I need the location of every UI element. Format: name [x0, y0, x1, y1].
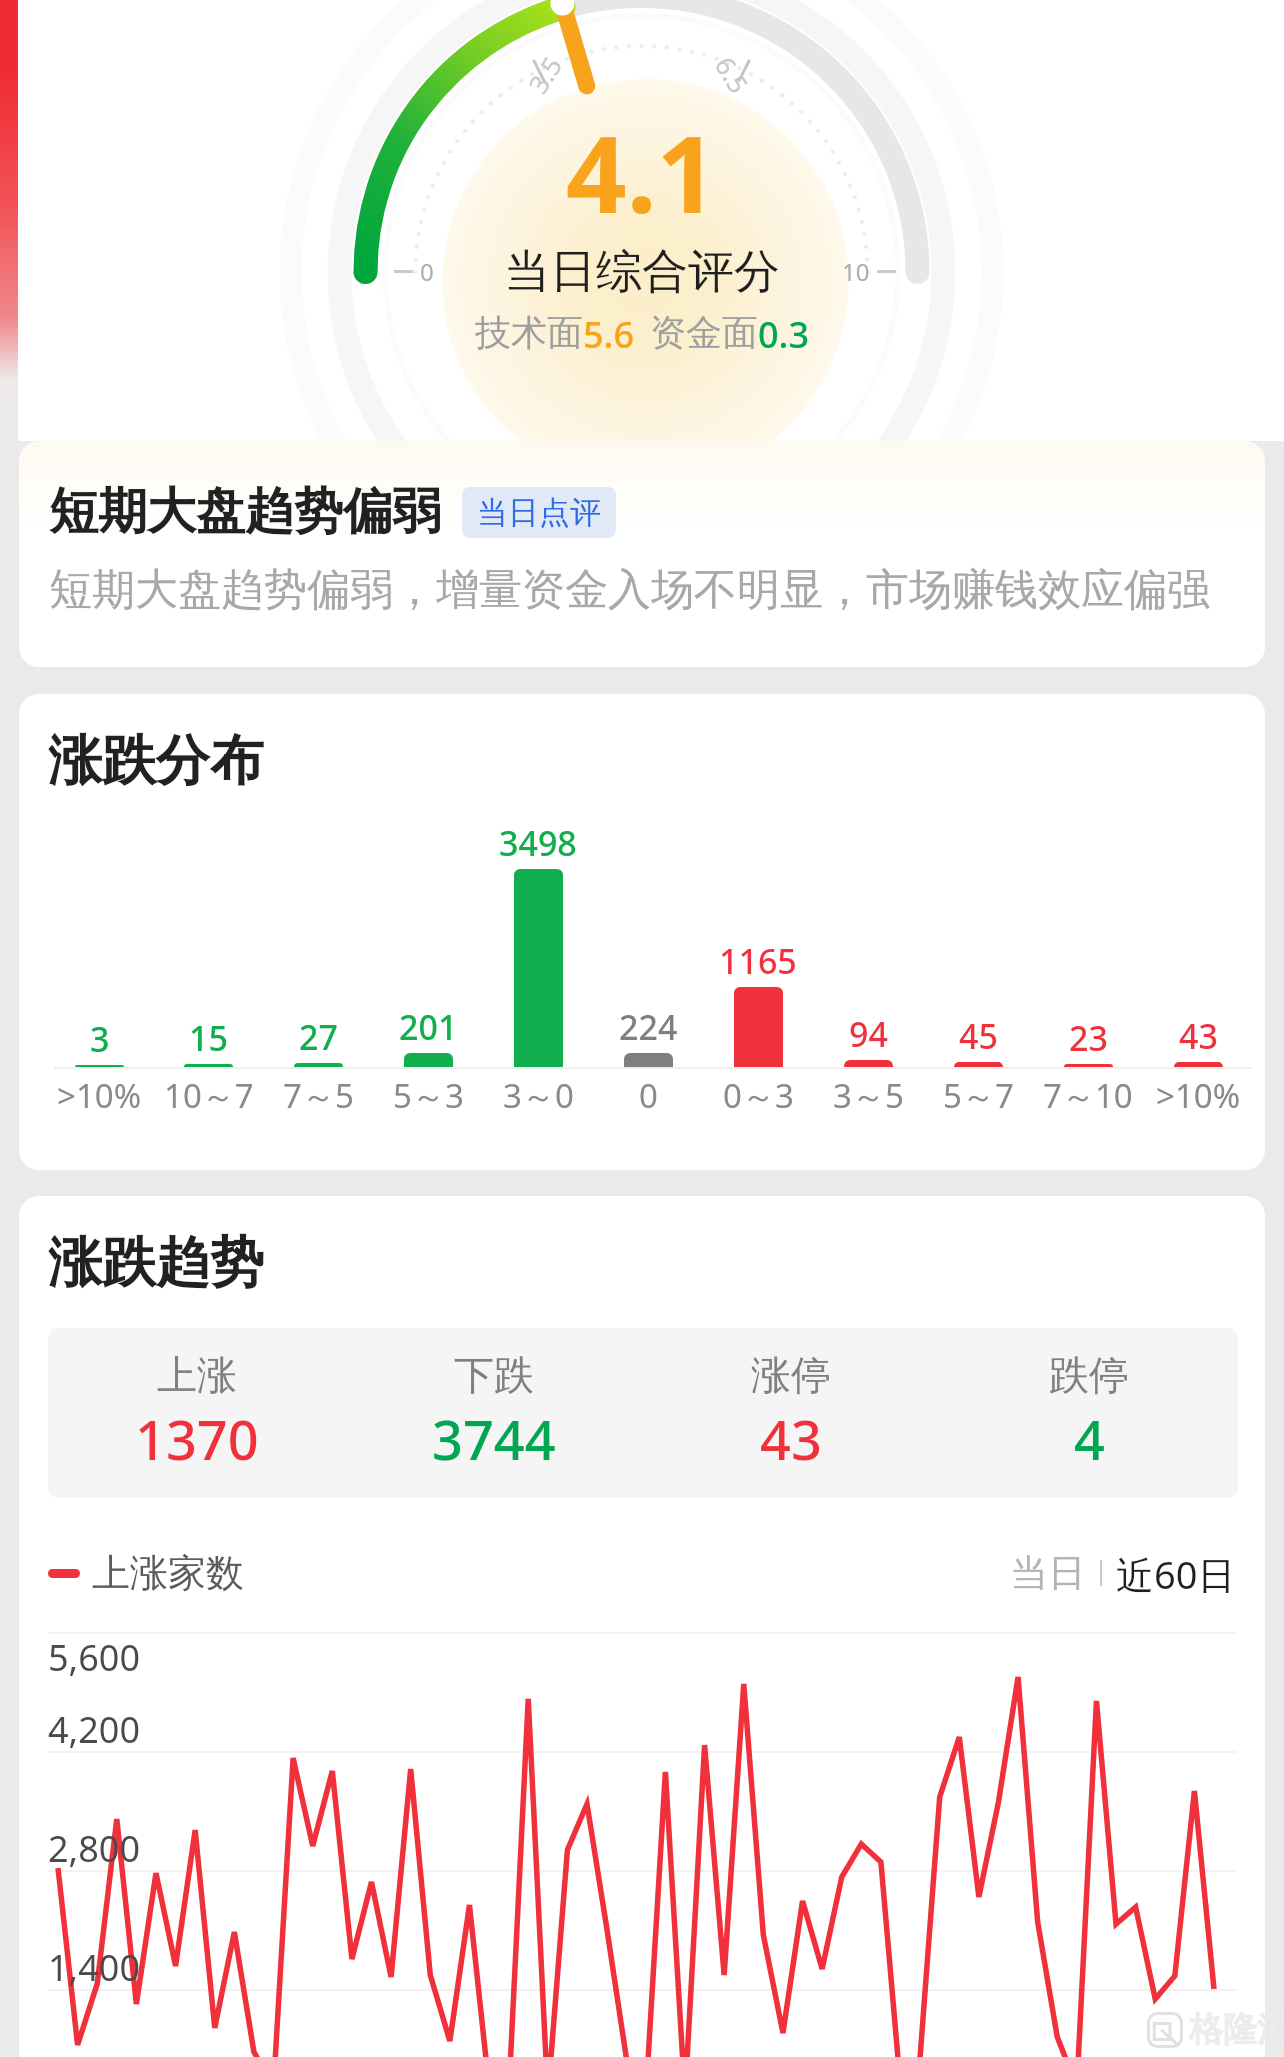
staticText: 5～3 [393, 1073, 464, 1118]
staticText: 43 [760, 1402, 822, 1476]
staticText: 7～10 [1043, 1073, 1133, 1118]
staticText: 短期大盘趋势偏弱，增量资金入场不明显，市场赚钱效应偏强 [49, 563, 1210, 617]
staticText: 当日点评 [477, 493, 601, 532]
staticText: 4,200 [48, 1705, 141, 1754]
staticText: 224 [619, 1004, 678, 1050]
button[interactable]: 201 [373, 694, 483, 1170]
button[interactable]: 224 [593, 694, 703, 1170]
staticText: 涨跌趋势 [48, 1229, 264, 1297]
staticText: 资金面 [650, 310, 758, 355]
staticText: 10 [842, 255, 870, 288]
staticText: 45 [959, 1013, 998, 1059]
staticText: 下跌 [454, 1350, 534, 1400]
button[interactable]: 45 [923, 694, 1033, 1170]
button[interactable]: 3498 [483, 694, 593, 1170]
staticText: 23 [1069, 1015, 1108, 1061]
button[interactable]: 当日综合评分 4.1 [0, 0, 1284, 441]
staticText: 10～7 [164, 1073, 254, 1118]
staticText: 5～7 [943, 1073, 1014, 1118]
staticText: 6.5 [708, 49, 757, 99]
staticText: 94 [849, 1011, 888, 1057]
staticText: 格隆汇 [1189, 2008, 1284, 2051]
button[interactable]: 当日点评 [462, 487, 616, 538]
staticText: >10% [1156, 1073, 1241, 1118]
staticText: 0 [639, 1073, 658, 1118]
button[interactable]: 23 [1033, 694, 1143, 1170]
staticText: 3～0 [503, 1073, 574, 1118]
staticText: 技术面 [475, 310, 583, 355]
staticText: 3～5 [833, 1073, 904, 1118]
staticText: 1370 [135, 1402, 259, 1476]
staticText: 当日综合评分 [504, 243, 780, 301]
button[interactable]: 3 [45, 694, 154, 1170]
staticText: 43 [1179, 1013, 1218, 1059]
button[interactable]: 15 [154, 694, 263, 1170]
staticText: 0～3 [723, 1073, 794, 1118]
staticText: 上涨家数 [92, 1549, 244, 1597]
button[interactable]: 27 [263, 694, 373, 1170]
staticText: 跌停 [1049, 1350, 1129, 1400]
staticText: 0 [420, 255, 434, 288]
staticText: 3498 [499, 820, 577, 866]
button[interactable]: 43 [1143, 694, 1253, 1170]
staticText: 201 [399, 1004, 458, 1050]
button[interactable]: 94 [813, 694, 923, 1170]
staticText: 上涨 [157, 1350, 237, 1400]
staticText: 近60日 [1116, 1548, 1236, 1598]
staticText: 7～5 [283, 1073, 354, 1118]
staticText: 涨停 [751, 1350, 831, 1400]
staticText: 1,400 [48, 1943, 141, 1992]
staticText: 5,600 [48, 1633, 141, 1682]
staticText: 0.3 [758, 310, 809, 359]
staticText: 涨跌分布 [48, 727, 264, 795]
staticText: 4 [1074, 1402, 1105, 1476]
button[interactable]: 1165 [703, 694, 813, 1170]
button[interactable]: 跌停 [940, 1328, 1238, 1498]
staticText: 15 [189, 1015, 228, 1061]
button[interactable]: 近60日 [1114, 1548, 1238, 1598]
staticText: 27 [299, 1014, 338, 1060]
staticText: 3.5 [520, 49, 569, 99]
staticText: 3 [90, 1016, 110, 1062]
staticText: 短期大盘趋势偏弱 [49, 481, 441, 543]
button[interactable]: 涨停 [642, 1328, 940, 1498]
staticText: >10% [57, 1073, 142, 1118]
button[interactable]: 当日 [1008, 1549, 1088, 1597]
staticText: 1165 [719, 938, 797, 984]
staticText: 3744 [432, 1402, 556, 1476]
staticText: 2,800 [48, 1824, 141, 1873]
button[interactable]: 上涨 [48, 1328, 345, 1498]
staticText: 当日 [1010, 1549, 1086, 1597]
button[interactable]: 下跌 [345, 1328, 642, 1498]
button[interactable]: 短期大盘趋势偏弱 [19, 441, 1265, 667]
staticText: 4.1 [566, 100, 718, 244]
staticText: 5.6 [583, 310, 634, 359]
